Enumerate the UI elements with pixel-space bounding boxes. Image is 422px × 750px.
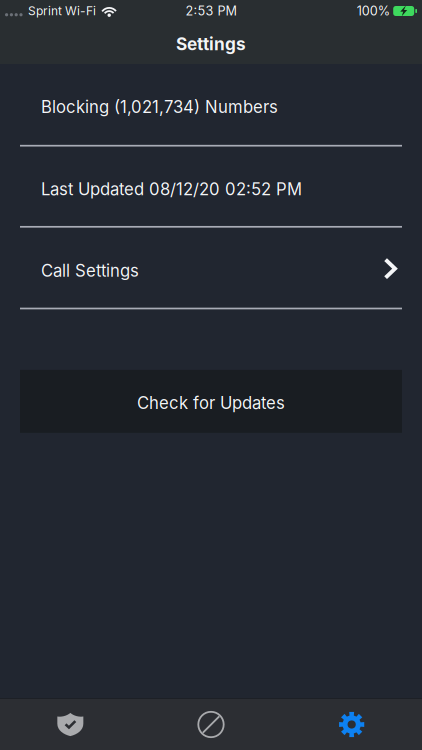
button[interactable]: Last Updated 08/12/20 02:52 PM <box>0 147 422 228</box>
staticText: Sprint Wi-Fi <box>28 4 96 18</box>
button[interactable]: Protection <box>0 699 141 750</box>
button[interactable]: Call Settings <box>0 228 422 309</box>
button[interactable]: Blocking (1,021,734) Numbers <box>0 64 422 146</box>
staticText: Blocking (1,021,734) Numbers <box>41 97 278 117</box>
button[interactable]: Check for Updates <box>20 370 402 433</box>
button[interactable]: Settings <box>281 699 422 750</box>
staticText: Settings <box>176 34 246 54</box>
staticText: 2:53 PM <box>185 3 236 19</box>
staticText: Call Settings <box>41 261 139 281</box>
staticText: Check for Updates <box>137 393 285 413</box>
staticText: Last Updated 08/12/20 02:52 PM <box>41 179 302 199</box>
button[interactable]: Blocked numbers <box>141 699 281 750</box>
staticText: 100% <box>357 3 390 19</box>
